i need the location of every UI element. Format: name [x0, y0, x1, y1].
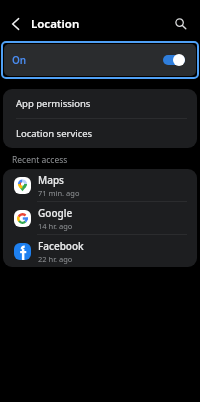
staticText: 22 hr. ago [38, 254, 73, 264]
button[interactable]: Facebook [3, 235, 197, 267]
button[interactable]: Maps [3, 169, 197, 201]
staticText: On [12, 53, 27, 67]
button[interactable] [168, 11, 194, 37]
staticText: 14 hr. ago [38, 221, 73, 231]
button[interactable]: App permissions [3, 89, 197, 118]
button[interactable]: On [4, 44, 196, 76]
staticText: 71 min. ago [38, 188, 80, 198]
button[interactable] [7, 15, 25, 33]
staticText: Facebook [38, 239, 84, 253]
staticText: App permissions [16, 97, 91, 110]
button[interactable]: Google [3, 202, 197, 234]
staticText: Maps [38, 173, 64, 187]
staticText: Location services [16, 127, 93, 140]
button[interactable]: Location services [3, 119, 197, 148]
staticText: Recent access [12, 154, 68, 166]
staticText: Location [31, 16, 80, 32]
staticText: Google [38, 206, 73, 220]
